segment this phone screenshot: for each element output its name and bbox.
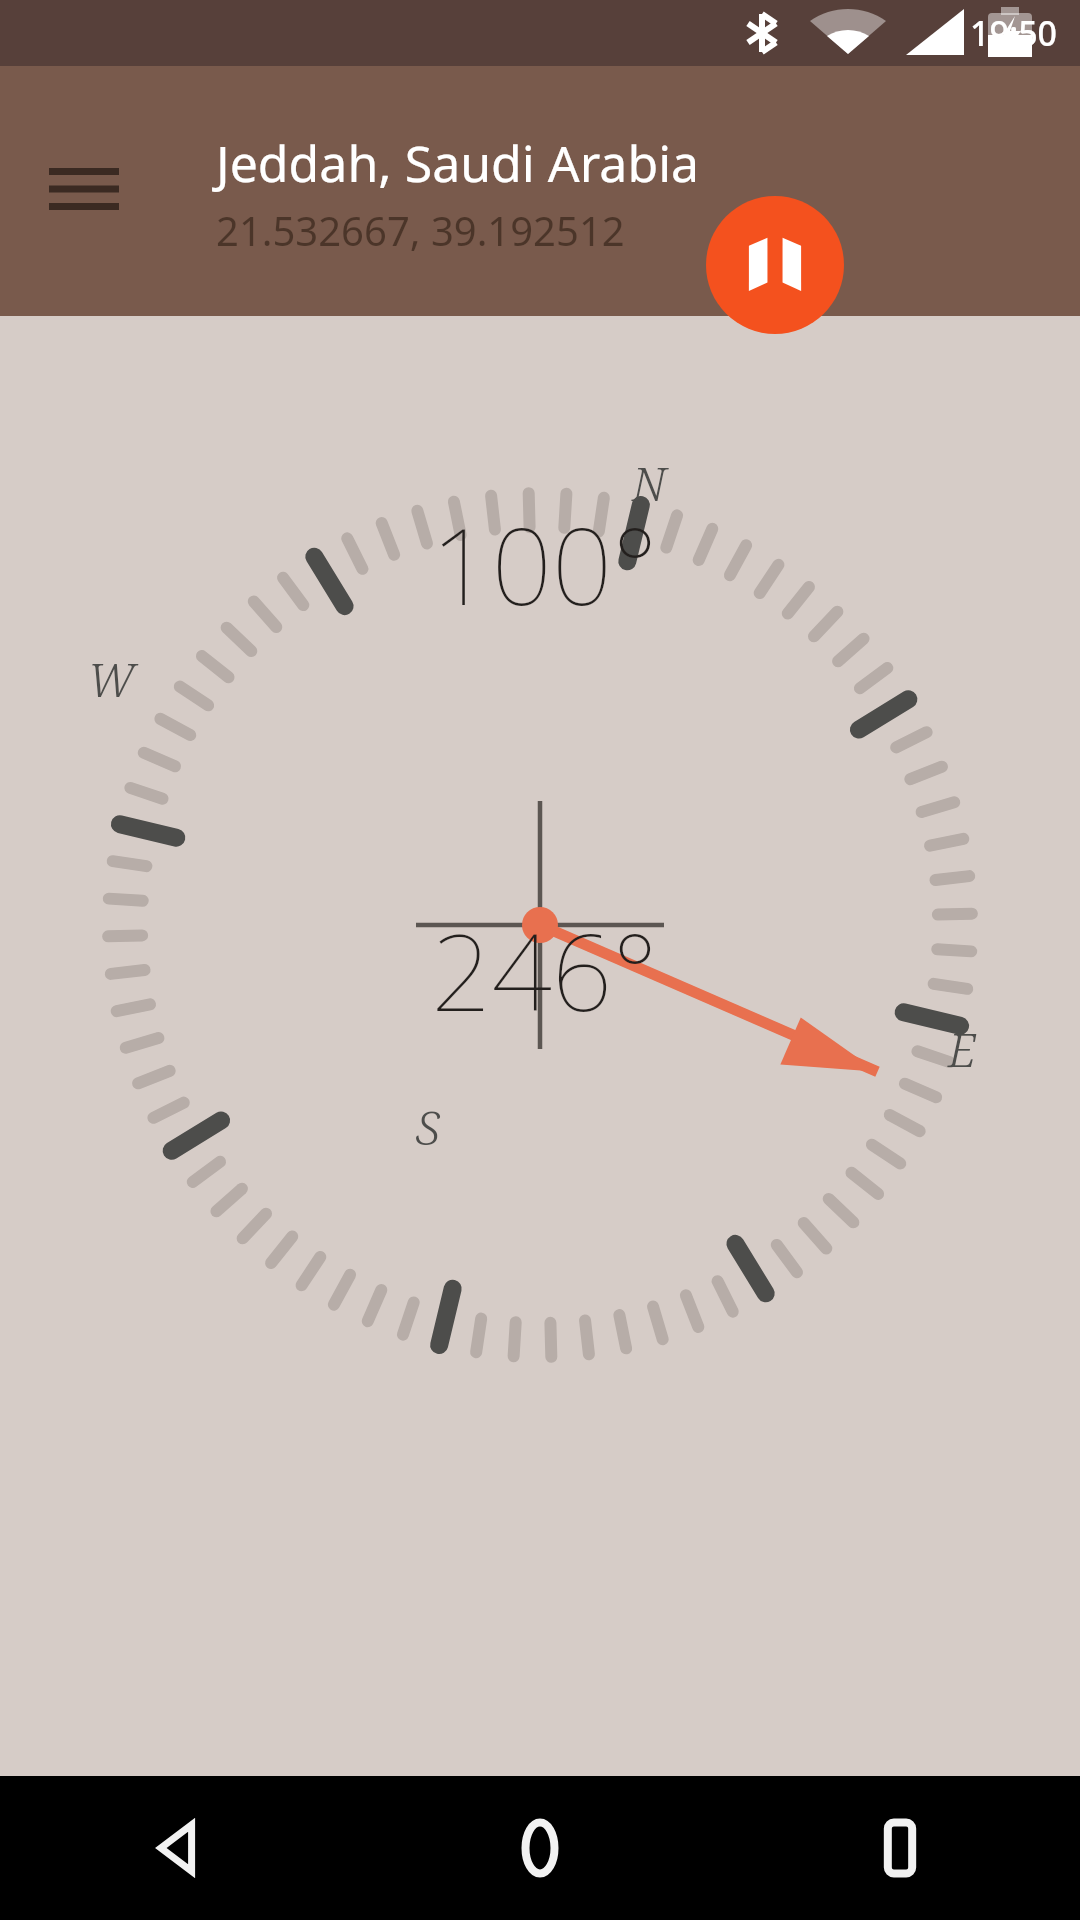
staticText: S (416, 1096, 440, 1159)
staticText: W (88, 648, 135, 711)
staticText: N (632, 452, 667, 515)
button[interactable]: Home (360, 1776, 720, 1920)
button[interactable]: Recent apps (720, 1776, 1080, 1920)
staticText: E (948, 1018, 977, 1081)
staticText: 100° (431, 492, 658, 636)
staticText: 246° (431, 898, 658, 1042)
button[interactable]: Open navigation menu (28, 133, 140, 245)
staticText: 21.532667, 39.192512 (216, 203, 625, 257)
button[interactable]: Back (0, 1776, 360, 1920)
staticText: Jeddah, Saudi Arabia (216, 129, 700, 197)
staticText: 19:50 (970, 10, 1058, 56)
button[interactable]: Open map (706, 196, 844, 334)
